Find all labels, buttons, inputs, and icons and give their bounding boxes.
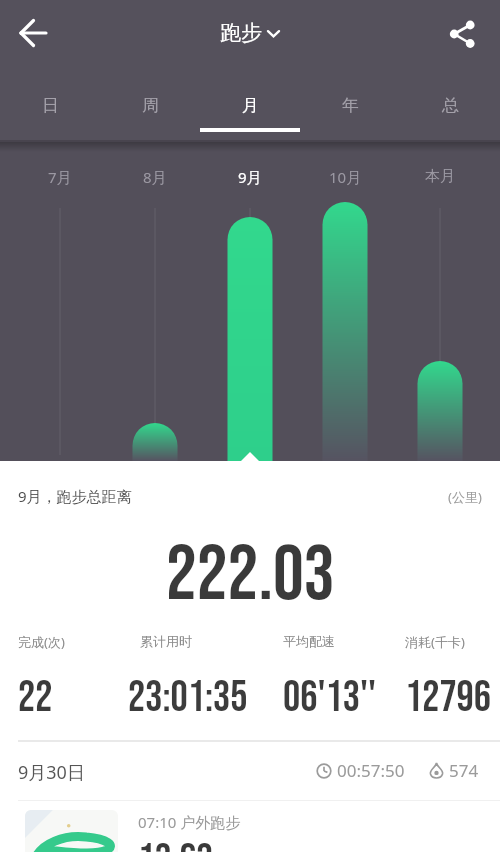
staticText: 10月 (329, 167, 362, 187)
staticText: 222.03 (166, 530, 335, 620)
button[interactable]: 9月30日 (0, 741, 500, 800)
staticText: 13.63 (138, 835, 214, 852)
button[interactable]: 年 (300, 66, 400, 128)
staticText: 总 (442, 95, 459, 116)
staticText: 周 (142, 95, 159, 116)
button[interactable] (438, 2, 500, 64)
staticText: 9月 (238, 167, 262, 187)
staticText: 7月 (48, 167, 72, 187)
button[interactable]: 周 (100, 66, 200, 128)
staticText: 日 (42, 95, 59, 116)
staticText: 跑步 (220, 20, 262, 46)
staticText: 平均配速 (283, 633, 335, 649)
staticText: 06'13'' (283, 672, 377, 724)
staticText: 12796 (405, 672, 491, 724)
staticText: 消耗(千卡) (405, 633, 465, 651)
staticText: (公里) (448, 488, 482, 506)
staticText: 07:10 户外跑步 (138, 812, 241, 832)
button[interactable] (0, 2, 62, 64)
staticText: 9月30日 (18, 760, 85, 785)
staticText: 年 (342, 95, 359, 116)
button[interactable]: 月 (200, 66, 300, 128)
staticText: 00:57:50 (337, 759, 405, 782)
staticText: 22 (18, 672, 53, 724)
staticText: 9月，跑步总距离 (18, 486, 132, 506)
staticText: 574 (449, 759, 479, 782)
button[interactable]: 总 (400, 66, 500, 128)
staticText: 8月 (143, 167, 167, 187)
staticText: 月 (242, 95, 259, 116)
button[interactable]: 跑步 (220, 20, 280, 46)
staticText: 累计用时 (140, 633, 192, 649)
staticText: 23:01:35 (128, 672, 248, 724)
staticText: 本月 (425, 167, 455, 186)
staticText: 完成(次) (18, 633, 65, 651)
button[interactable]: 07:10 户外跑步 (0, 810, 500, 852)
button[interactable]: 日 (0, 66, 100, 128)
